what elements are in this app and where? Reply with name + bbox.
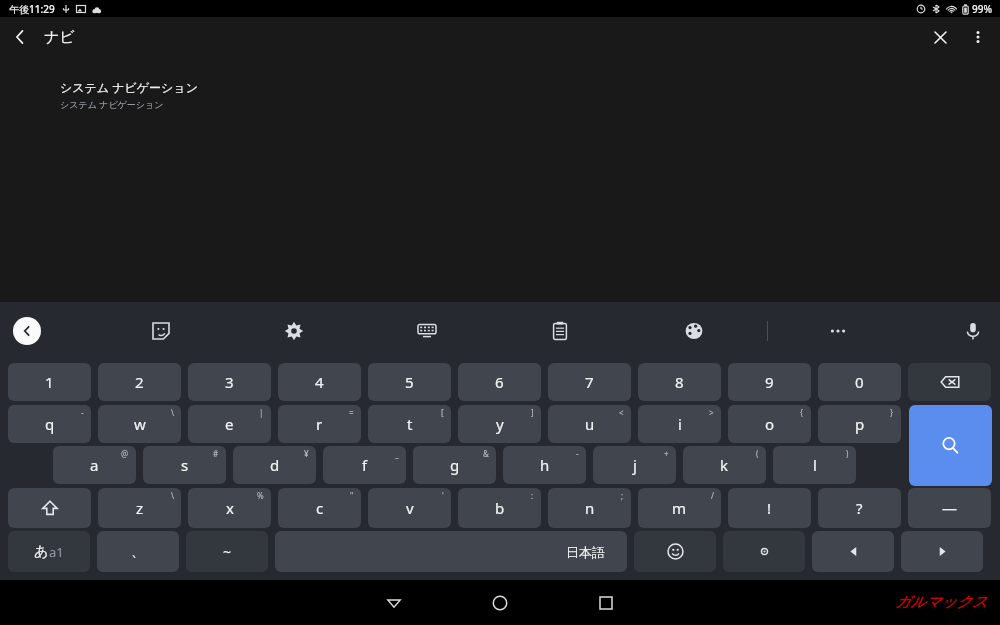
staticText: } bbox=[890, 407, 894, 418]
button[interactable]: e bbox=[188, 405, 271, 443]
staticText: ) bbox=[846, 448, 849, 459]
button[interactable]: ツール bbox=[139, 309, 183, 353]
button[interactable]: 8 bbox=[638, 363, 721, 401]
button[interactable]: k bbox=[683, 446, 766, 484]
button[interactable]: あ bbox=[8, 531, 90, 572]
button[interactable]: ! bbox=[728, 488, 811, 528]
button[interactable]: m bbox=[638, 488, 721, 528]
button[interactable]: w bbox=[98, 405, 181, 443]
staticText: # bbox=[213, 448, 219, 459]
button[interactable]: ホーム bbox=[478, 581, 522, 625]
button[interactable]: 3 bbox=[188, 363, 271, 401]
button[interactable]: a bbox=[53, 446, 136, 484]
staticText: 4 bbox=[315, 372, 324, 392]
staticText: " bbox=[350, 490, 354, 501]
button[interactable]: right bbox=[901, 531, 983, 572]
staticText: \ bbox=[171, 407, 174, 418]
button[interactable]: 9 bbox=[728, 363, 811, 401]
button[interactable]: 戻る bbox=[372, 581, 416, 625]
button[interactable]: h bbox=[503, 446, 586, 484]
button[interactable]: 閉じる bbox=[920, 17, 960, 57]
button[interactable]: s bbox=[143, 446, 226, 484]
staticText: / bbox=[711, 490, 714, 501]
button[interactable]: j bbox=[593, 446, 676, 484]
button[interactable]: ツール bbox=[672, 309, 716, 353]
button[interactable]: ツール bbox=[405, 309, 449, 353]
staticText: @ bbox=[121, 448, 129, 459]
button[interactable]: 7 bbox=[548, 363, 631, 401]
staticText: [ bbox=[441, 407, 444, 418]
button[interactable]: ツール bbox=[538, 309, 582, 353]
staticText: b bbox=[495, 498, 505, 518]
button[interactable]: ~ bbox=[186, 531, 268, 572]
button[interactable]: d bbox=[233, 446, 316, 484]
button[interactable]: b bbox=[458, 488, 541, 528]
button[interactable]: g bbox=[413, 446, 496, 484]
staticText: 0 bbox=[855, 372, 864, 392]
button[interactable]: y bbox=[458, 405, 541, 443]
staticText: システム ナビゲーション bbox=[60, 79, 198, 95]
button[interactable]: l bbox=[773, 446, 856, 484]
button[interactable]: t bbox=[368, 405, 451, 443]
staticText: ¥ bbox=[304, 448, 309, 459]
button[interactable]: 4 bbox=[278, 363, 361, 401]
staticText: ガルマックス bbox=[895, 593, 988, 612]
button[interactable]: システム ナビゲーション bbox=[60, 79, 1000, 110]
button[interactable]: ツール bbox=[272, 309, 316, 353]
button[interactable]: f bbox=[323, 446, 406, 484]
button[interactable]: ツール bbox=[951, 309, 995, 353]
button[interactable]: i bbox=[638, 405, 721, 443]
button[interactable]: ? bbox=[818, 488, 901, 528]
staticText: p bbox=[855, 414, 865, 434]
staticText: ナビ bbox=[44, 28, 75, 47]
staticText: ~ bbox=[223, 542, 232, 561]
staticText: ! bbox=[767, 498, 772, 518]
button[interactable]: x bbox=[188, 488, 271, 528]
button[interactable]: キーボードを閉じる bbox=[13, 317, 41, 345]
button[interactable]: v bbox=[368, 488, 451, 528]
staticText: 7 bbox=[585, 372, 594, 392]
staticText: 6 bbox=[495, 372, 504, 392]
button[interactable]: ツール bbox=[816, 309, 860, 353]
staticText: % bbox=[257, 490, 264, 501]
staticText: ' bbox=[442, 490, 444, 501]
staticText: システム ナビゲーション bbox=[60, 98, 164, 110]
button[interactable]: left bbox=[812, 531, 894, 572]
staticText: 2 bbox=[135, 372, 144, 392]
button[interactable]: 2 bbox=[98, 363, 181, 401]
staticText: ] bbox=[531, 407, 534, 418]
button[interactable]: 6 bbox=[458, 363, 541, 401]
button[interactable]: emoji bbox=[634, 531, 716, 572]
button[interactable]: dot bbox=[723, 531, 805, 572]
button[interactable]: 5 bbox=[368, 363, 451, 401]
button[interactable]: その他のオプション bbox=[960, 19, 996, 55]
button[interactable]: u bbox=[548, 405, 631, 443]
button[interactable]: o bbox=[728, 405, 811, 443]
staticText: f bbox=[362, 455, 368, 475]
staticText: - bbox=[81, 407, 84, 418]
button[interactable]: 、 bbox=[97, 531, 179, 572]
button[interactable]: 1 bbox=[8, 363, 91, 401]
staticText: 午後11:29 bbox=[9, 2, 55, 16]
button[interactable]: 検索 bbox=[909, 405, 992, 486]
staticText: 5 bbox=[405, 372, 414, 392]
button[interactable]: Shift bbox=[8, 488, 91, 528]
button[interactable]: n bbox=[548, 488, 631, 528]
button[interactable]: p bbox=[818, 405, 901, 443]
button[interactable]: 戻る bbox=[0, 17, 40, 57]
button[interactable]: z bbox=[98, 488, 181, 528]
button[interactable]: r bbox=[278, 405, 361, 443]
staticText: q bbox=[45, 414, 55, 434]
button[interactable]: q bbox=[8, 405, 91, 443]
staticText: h bbox=[540, 455, 550, 475]
button[interactable]: 最近のアプリ bbox=[584, 581, 628, 625]
staticText: | bbox=[259, 407, 264, 418]
button[interactable]: 削除 bbox=[908, 363, 991, 401]
staticText: 8 bbox=[675, 372, 684, 392]
button[interactable]: — bbox=[908, 488, 991, 528]
staticText: ; bbox=[621, 490, 624, 501]
button[interactable]: 日本語 bbox=[275, 531, 627, 572]
button[interactable]: 0 bbox=[818, 363, 901, 401]
button[interactable]: c bbox=[278, 488, 361, 528]
staticText: ? bbox=[856, 498, 863, 518]
